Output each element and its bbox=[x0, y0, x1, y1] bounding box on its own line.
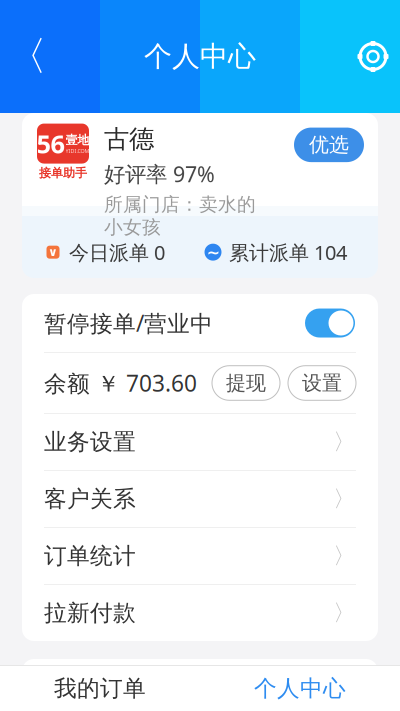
staticText: 〉 bbox=[333, 668, 356, 695]
button[interactable]: 设置 bbox=[288, 366, 356, 400]
button[interactable]: Settings bbox=[346, 28, 400, 84]
staticText: 〉 bbox=[333, 485, 356, 513]
staticText: 优选 bbox=[309, 133, 349, 157]
button[interactable]: Back bbox=[0, 28, 54, 84]
staticText: 我的订单 bbox=[54, 675, 146, 702]
staticText: 业务设置 bbox=[44, 428, 136, 456]
staticText: 〉 bbox=[333, 599, 356, 627]
staticText: 余额 ￥ 703.60 bbox=[44, 368, 197, 398]
staticText: 设置 bbox=[302, 371, 342, 395]
staticText: 个人中心 bbox=[144, 39, 256, 74]
staticText: 接单助手 bbox=[39, 166, 87, 180]
staticText: 订单统计 bbox=[44, 542, 136, 570]
staticText: ∼ bbox=[206, 243, 219, 261]
button[interactable]: 个人中心 bbox=[200, 666, 400, 711]
staticText: YIDI.COM bbox=[65, 147, 89, 154]
staticText: 拉新付款 bbox=[44, 599, 136, 627]
button[interactable]: 客户关系 bbox=[22, 471, 378, 527]
staticText: 客户关系 bbox=[44, 485, 136, 513]
staticText: 壹地 bbox=[65, 133, 89, 147]
staticText: ∨ bbox=[48, 245, 58, 259]
staticText: 暂停接单/营业中 bbox=[44, 308, 213, 338]
staticText: 个人中心 bbox=[254, 675, 346, 702]
button[interactable]: 我的订单 bbox=[0, 666, 200, 711]
button[interactable]: 拉新付款 bbox=[22, 585, 378, 641]
staticText: 客服电话 bbox=[74, 668, 166, 695]
button[interactable]: 业务设置 bbox=[22, 414, 378, 470]
staticText: 〉 bbox=[333, 542, 356, 570]
staticText: 好评率 97% bbox=[104, 160, 215, 188]
button[interactable]: 订单统计 bbox=[22, 528, 378, 584]
staticText: 古德 bbox=[104, 124, 154, 155]
staticText: 提现 bbox=[226, 371, 266, 395]
button[interactable]: 提现 bbox=[212, 366, 280, 400]
button[interactable]: 客服电话 bbox=[22, 659, 378, 704]
staticText: 所属门店：卖水的小女孩 bbox=[104, 193, 256, 239]
button[interactable]: 暂停接单营业中 bbox=[304, 306, 356, 340]
staticText: 〉 bbox=[333, 428, 356, 456]
button[interactable]: 优选 bbox=[294, 128, 364, 162]
staticText: 今日派单 0 bbox=[69, 239, 165, 265]
staticText: 56 bbox=[36, 127, 64, 160]
staticText: 累计派单 104 bbox=[229, 239, 347, 265]
staticText: 〈 bbox=[7, 32, 47, 81]
